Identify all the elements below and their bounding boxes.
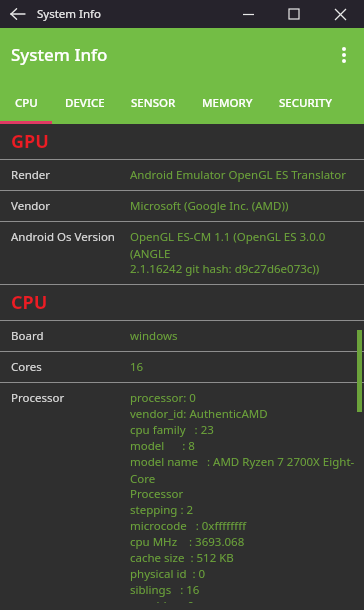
staticText: Android Os Version [11, 229, 130, 245]
staticText: microcode : 0xffffffff [130, 518, 247, 534]
staticText: cpu MHz : 3693.068 [130, 534, 245, 550]
staticText: 16 [130, 359, 144, 375]
staticText: vendor_id: AuthenticAMD [130, 406, 268, 422]
staticText: System Info [37, 6, 101, 22]
staticText: CPU [15, 95, 38, 111]
button[interactable]: More options [324, 35, 364, 75]
staticText: model : 8 [130, 438, 195, 454]
staticText: SECURITY [279, 95, 333, 111]
staticText: processor: 0 [130, 390, 196, 406]
staticText: 2.1.16242 git hash: d9c27d6e073c)) [130, 261, 320, 277]
staticText: cache size : 512 KB [130, 550, 234, 566]
button[interactable]: Back [0, 0, 36, 28]
button[interactable]: SECURITY [266, 81, 346, 124]
staticText: CPU [11, 290, 48, 315]
staticText: core id : 0 [130, 598, 195, 603]
button[interactable]: Minimize [225, 0, 271, 28]
staticText: siblings : 16 [130, 582, 200, 598]
staticText: Render [11, 167, 130, 183]
staticText: Cores [11, 359, 130, 375]
staticText: Microsoft (Google Inc. (AMD)) [130, 198, 289, 214]
staticText: System Info [11, 43, 108, 66]
staticText: GPU [11, 129, 49, 154]
staticText: windows [130, 328, 178, 344]
button[interactable]: Close [316, 0, 364, 28]
staticText: Processor [11, 390, 130, 406]
staticText: model name : AMD Ryzen 7 2700X Eight-Cor… [130, 454, 364, 486]
staticText: OpenGL ES-CM 1.1 (OpenGL ES 3.0.0 (ANGLE [130, 229, 364, 261]
staticText: SENSOR [131, 95, 176, 111]
staticText: MEMORY [202, 95, 253, 111]
staticText: DEVICE [65, 95, 105, 111]
button[interactable]: MEMORY [189, 81, 266, 124]
button[interactable]: DEVICE [52, 81, 118, 124]
staticText: Vendor [11, 198, 130, 214]
button[interactable]: Maximize [271, 0, 316, 28]
staticText: stepping : 2 [130, 502, 194, 518]
staticText: physical id : 0 [130, 566, 206, 582]
staticText: cpu family : 23 [130, 422, 214, 438]
staticText: Board [11, 328, 130, 344]
staticText: Android Emulator OpenGL ES Translator [130, 167, 346, 183]
button[interactable]: CPU [0, 81, 52, 124]
staticText: Processor [130, 486, 184, 502]
button[interactable]: SENSOR [118, 81, 189, 124]
